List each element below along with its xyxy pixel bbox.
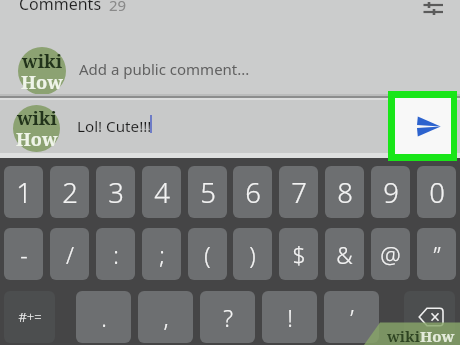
button[interactable]: 5 bbox=[188, 166, 227, 218]
staticText: How bbox=[420, 326, 455, 345]
staticText: 4 bbox=[154, 174, 170, 211]
staticText: #+= bbox=[18, 308, 42, 326]
staticText: 7 bbox=[291, 174, 307, 211]
button[interactable]: . bbox=[76, 291, 131, 343]
staticText: 29 bbox=[109, 0, 127, 15]
staticText: 0 bbox=[429, 174, 445, 211]
button[interactable]: ! bbox=[262, 291, 317, 343]
button[interactable]: / bbox=[50, 228, 89, 280]
button[interactable]: , bbox=[138, 291, 193, 343]
button[interactable]: 9 bbox=[371, 166, 410, 218]
staticText: 5 bbox=[200, 174, 216, 211]
button[interactable]: 8 bbox=[325, 166, 364, 218]
staticText: wiki bbox=[17, 106, 57, 131]
staticText: 2 bbox=[62, 174, 78, 211]
staticText: & bbox=[336, 239, 353, 270]
button[interactable]: ” bbox=[417, 228, 456, 280]
button[interactable]: $ bbox=[279, 228, 318, 280]
staticText: How bbox=[21, 69, 63, 92]
button[interactable]: Sort comments bbox=[417, 0, 449, 25]
button[interactable]: 1 bbox=[4, 166, 43, 218]
button[interactable]: ( bbox=[188, 228, 227, 280]
button[interactable]: & bbox=[325, 228, 364, 280]
staticText: 9 bbox=[383, 174, 399, 211]
button[interactable]: 6 bbox=[233, 166, 272, 218]
staticText: : bbox=[113, 239, 119, 270]
staticText: ! bbox=[287, 302, 293, 333]
button[interactable]: 2 bbox=[50, 166, 89, 218]
button[interactable]: 0 bbox=[417, 166, 456, 218]
button[interactable]: - bbox=[4, 228, 43, 280]
staticText: wiki bbox=[387, 326, 420, 345]
staticText: ; bbox=[159, 239, 165, 270]
staticText: $ bbox=[292, 239, 306, 270]
button[interactable]: 4 bbox=[142, 166, 181, 218]
button[interactable]: ’ bbox=[324, 291, 379, 343]
button[interactable]: Send comment bbox=[388, 91, 457, 161]
staticText: How bbox=[16, 127, 58, 149]
staticText: . bbox=[101, 302, 107, 333]
staticText: ? bbox=[223, 302, 233, 333]
staticText: , bbox=[163, 302, 169, 333]
button[interactable]: @ bbox=[371, 228, 410, 280]
staticText: ’ bbox=[350, 302, 354, 333]
button[interactable]: ; bbox=[142, 228, 181, 280]
button[interactable]: 7 bbox=[279, 166, 318, 218]
staticText: Comments bbox=[19, 0, 102, 15]
button[interactable]: #+= bbox=[4, 291, 55, 343]
staticText: 6 bbox=[245, 174, 261, 211]
button[interactable]: wiki bbox=[0, 41, 460, 95]
staticText: 8 bbox=[337, 174, 353, 211]
button[interactable]: 3 bbox=[96, 166, 135, 218]
staticText: 1 bbox=[16, 174, 32, 211]
staticText: Lol! Cute!!! bbox=[77, 116, 152, 137]
staticText: ( bbox=[204, 239, 211, 270]
staticText: ” bbox=[433, 239, 441, 270]
button[interactable]: Backspace bbox=[404, 291, 455, 343]
staticText: 3 bbox=[108, 174, 124, 211]
button[interactable]: : bbox=[96, 228, 135, 280]
staticText: @ bbox=[380, 239, 401, 270]
staticText: - bbox=[20, 239, 28, 270]
button[interactable]: ) bbox=[233, 228, 272, 280]
staticText: / bbox=[66, 239, 74, 270]
staticText: wiki bbox=[22, 48, 63, 73]
button[interactable]: ? bbox=[200, 291, 255, 343]
staticText: Add a public comment... bbox=[79, 59, 250, 79]
staticText: ) bbox=[249, 239, 256, 270]
